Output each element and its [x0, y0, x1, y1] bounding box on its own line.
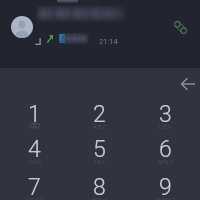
staticText: MNO	[158, 158, 175, 165]
staticText: 8	[93, 174, 106, 200]
button[interactable]: Contact photo	[11, 16, 33, 38]
staticText: 00:39	[81, 0, 100, 4]
staticText: 2	[93, 101, 106, 128]
staticText: 21:14	[99, 37, 118, 46]
staticText: 9	[159, 174, 172, 200]
staticText: DEF	[159, 123, 173, 130]
staticText: GHI	[29, 158, 42, 165]
button[interactable]: 8	[67, 174, 131, 200]
staticText: 6	[159, 136, 172, 163]
button[interactable]: 1	[2, 101, 66, 135]
button[interactable]: Call back	[168, 15, 192, 39]
button[interactable]: 9	[133, 174, 197, 200]
staticText: 5	[93, 136, 106, 163]
button[interactable]: 5	[67, 136, 131, 170]
button[interactable]: 4	[2, 136, 66, 170]
staticText: ABC	[93, 123, 108, 130]
staticText: 1	[28, 101, 41, 128]
button[interactable]: 7	[2, 174, 66, 200]
staticText: 4	[28, 136, 41, 163]
staticText: 7	[28, 174, 41, 200]
button[interactable]: Backspace	[176, 72, 200, 96]
staticText: PQRS	[26, 196, 45, 200]
staticText: 3	[159, 101, 172, 128]
staticText: TUV	[93, 196, 107, 200]
button[interactable]: 6	[133, 136, 197, 170]
button[interactable]: 3	[133, 101, 197, 135]
staticText: JKL	[93, 158, 107, 165]
button[interactable]: 2	[67, 101, 131, 135]
staticText: WXYZ	[156, 196, 176, 200]
